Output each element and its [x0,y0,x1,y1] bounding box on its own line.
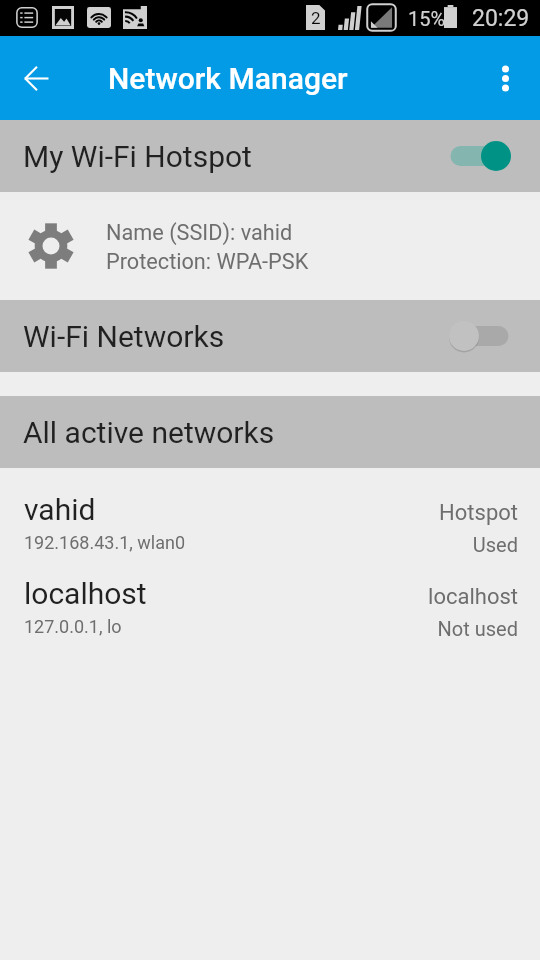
button[interactable]: vahid [0,468,540,552]
staticText: Wi-Fi Networks [23,319,225,354]
staticText: Protection: WPA-PSK [106,249,309,274]
staticText: My Wi-Fi Hotspot [23,139,252,174]
button[interactable]: Name (SSID): vahid [0,192,540,300]
staticText: 192.168.43.1, wlan0 [24,532,186,552]
staticText: Used [472,533,518,552]
staticText: Hotspot [439,500,518,526]
staticText: All active networks [23,415,275,450]
button[interactable]: My Wi-Fi Hotspot [0,120,540,192]
staticText: 20:29 [472,5,530,32]
staticText: vahid [24,492,96,527]
staticText: 127.0.0.1, lo [24,616,122,636]
staticText: Network Manager [108,61,348,96]
staticText: localhost [428,584,518,610]
button[interactable]: Navigate up [8,50,64,106]
button[interactable]: More options [479,52,531,104]
staticText: Name (SSID): vahid [106,220,293,245]
button[interactable]: localhost [0,552,540,636]
staticText: localhost [24,576,147,611]
staticText: 2 [311,8,321,28]
staticText: 15% [408,7,446,30]
button[interactable]: Wi-Fi Networks [0,300,540,372]
staticText: Not used [437,617,518,636]
